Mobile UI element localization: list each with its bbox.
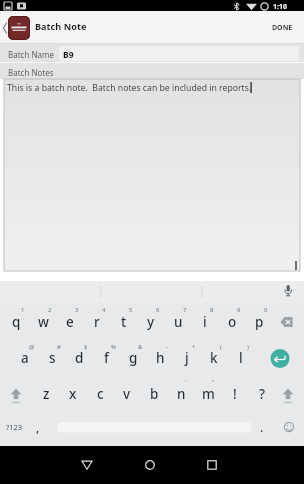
staticText: z: [43, 385, 50, 403]
staticText: Batch Notes: [8, 67, 54, 78]
button[interactable]: ?123: [1, 414, 27, 440]
button[interactable]: ,: [25, 414, 51, 440]
staticText: DONE: [272, 23, 293, 33]
staticText: a: [21, 349, 29, 367]
button[interactable]: k: [201, 345, 227, 371]
staticText: 1: [21, 306, 25, 314]
staticText: i: [203, 313, 207, 331]
button[interactable]: x: [60, 381, 86, 407]
staticText: c: [97, 385, 104, 403]
staticText: k: [210, 349, 218, 367]
button[interactable]: B9: [59, 46, 299, 61]
button[interactable]: [203, 446, 304, 484]
button[interactable]: w: [30, 309, 56, 335]
button[interactable]: j: [174, 345, 200, 371]
button[interactable]: [273, 281, 303, 302]
button[interactable]: i: [192, 309, 218, 335]
staticText: ": [212, 378, 215, 386]
staticText: (: [220, 343, 222, 351]
staticText: Batch Note: [35, 20, 87, 33]
button[interactable]: [273, 309, 301, 335]
button[interactable]: m: [195, 381, 221, 407]
button[interactable]: f: [93, 345, 119, 371]
staticText: #: [57, 343, 61, 351]
button[interactable]: [102, 446, 203, 484]
staticText: This is a batch note. Batch notes can be…: [7, 82, 252, 94]
button[interactable]: This is a batch note. Batch notes can be…: [4, 79, 300, 271]
staticText: e: [66, 313, 74, 331]
staticText: n: [177, 385, 186, 403]
staticText: r: [94, 313, 100, 331]
staticText: 8: [210, 306, 214, 314]
staticText: f: [104, 349, 109, 367]
staticText: 4: [102, 306, 106, 314]
staticText: ?: [259, 385, 266, 403]
staticText: B9: [63, 49, 74, 61]
staticText: u: [174, 313, 183, 331]
staticText: 1:10: [273, 2, 287, 12]
button[interactable]: [0, 446, 102, 484]
button[interactable]: [275, 381, 301, 407]
staticText: w: [38, 313, 49, 331]
button[interactable]: a: [12, 345, 38, 371]
staticText: o: [228, 313, 237, 331]
button[interactable]: o: [219, 309, 245, 335]
button[interactable]: ?: [249, 381, 275, 407]
staticText: d: [75, 349, 84, 367]
staticText: ?123: [6, 422, 23, 432]
button[interactable]: r: [84, 309, 110, 335]
button[interactable]: y: [138, 309, 164, 335]
staticText: j: [185, 349, 189, 367]
staticText: ,: [36, 419, 40, 435]
button[interactable]: p: [246, 309, 272, 335]
staticText: h: [156, 349, 165, 367]
staticText: $: [84, 343, 88, 351]
staticText: !: [233, 385, 237, 403]
button[interactable]: .: [249, 414, 275, 440]
staticText: +: [192, 343, 196, 351]
staticText: 3: [75, 306, 79, 314]
staticText: 0: [264, 306, 268, 314]
staticText: v: [123, 385, 131, 403]
staticText: b: [150, 385, 159, 403]
staticText: &: [138, 343, 143, 351]
staticText: 5: [129, 306, 133, 314]
button[interactable]: e: [57, 309, 83, 335]
staticText: s: [49, 349, 56, 367]
staticText: t: [121, 313, 127, 331]
staticText: Batch Name: [8, 49, 54, 60]
button[interactable]: [8, 16, 30, 40]
staticText: ': [185, 378, 187, 386]
button[interactable]: [270, 348, 291, 369]
staticText: 6: [156, 306, 160, 314]
button[interactable]: u: [165, 309, 191, 335]
button[interactable]: v: [114, 381, 140, 407]
staticText: -: [166, 343, 168, 351]
button[interactable]: t: [111, 309, 137, 335]
button[interactable]: l: [228, 345, 254, 371]
staticText: m: [202, 385, 215, 403]
button[interactable]: s: [39, 345, 65, 371]
staticText: g: [129, 349, 138, 367]
button[interactable]: d: [66, 345, 92, 371]
staticText: @: [29, 343, 35, 351]
button[interactable]: [276, 414, 302, 440]
staticText: 9: [237, 306, 241, 314]
button[interactable]: z: [33, 381, 59, 407]
staticText: %: [111, 343, 116, 351]
button[interactable]: DONE: [268, 19, 297, 37]
button[interactable]: b: [141, 381, 167, 407]
staticText: .: [260, 419, 264, 435]
button[interactable]: n: [168, 381, 194, 407]
button[interactable]: q: [3, 309, 29, 335]
staticText: y: [147, 313, 155, 331]
button[interactable]: [3, 381, 29, 407]
button[interactable]: h: [147, 345, 173, 371]
staticText: q: [12, 313, 21, 331]
staticText: l: [239, 349, 243, 367]
button[interactable]: g: [120, 345, 146, 371]
button[interactable]: c: [87, 381, 113, 407]
staticText: 7: [183, 306, 187, 314]
button[interactable]: !: [222, 381, 248, 407]
